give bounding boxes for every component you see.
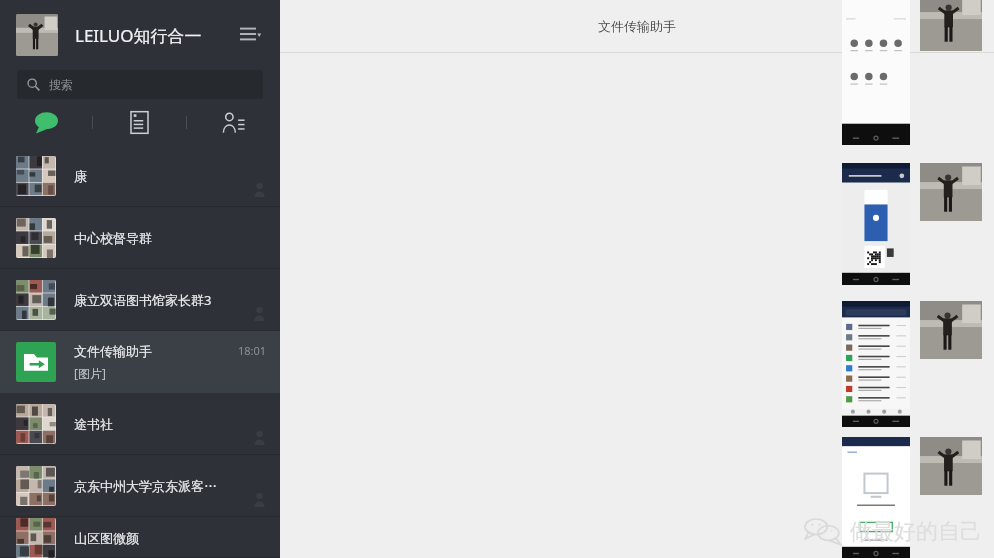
staticText: 京东中州大学京东派客户服… [74,478,227,494]
button[interactable]: 文件传输助手 [0,331,280,393]
staticText: [图片] [74,365,106,381]
button[interactable]: Photo [920,437,982,495]
button[interactable]: Menu [236,21,264,49]
button[interactable]: Photo [920,0,982,51]
button[interactable]: 康 [0,145,280,207]
staticText: 搜索 [49,77,73,92]
staticText: 山区图微颜 [74,530,139,546]
staticText: 做最好的自己 [850,518,982,546]
staticText: 18:01 [238,343,267,358]
button[interactable]: Contacts [187,99,280,145]
button[interactable]: 途书社 [0,393,280,455]
button[interactable]: Screenshot image [842,0,910,145]
staticText: 文件传输助手 [598,18,676,34]
button[interactable]: 康立双语图书馆家长群3 [0,269,280,331]
button[interactable]: Screenshot image [842,301,910,427]
button[interactable]: 搜索 [17,70,263,99]
staticText: 途书社 [74,416,113,432]
staticText: 中心校督导群 [74,230,152,246]
button[interactable]: Photo [920,301,982,359]
staticText: 康 [74,168,87,184]
button[interactable]: 京东中州大学京东派客户服… [0,455,280,517]
staticText: 康立双语图书馆家长群3 [74,291,212,309]
staticText: 文件传输助手 [74,343,152,359]
button[interactable]: Photo [920,163,982,221]
staticText: LEILUO知行合一 [75,24,236,47]
button[interactable]: 山区图微颜 [0,517,280,558]
button[interactable]: Screenshot image [842,163,910,285]
button[interactable]: Moments [93,99,186,145]
button[interactable]: My profile [16,14,58,56]
button[interactable]: Screenshot image [842,437,910,558]
button[interactable]: Chats [0,99,92,145]
button[interactable]: 中心校督导群 [0,207,280,269]
